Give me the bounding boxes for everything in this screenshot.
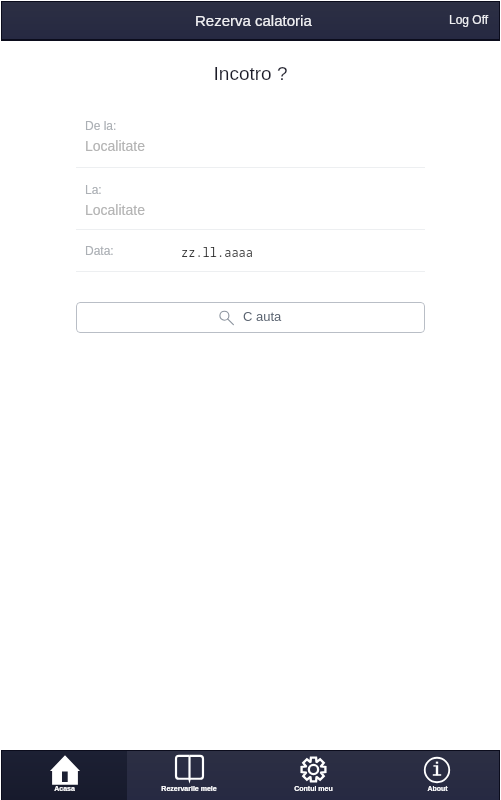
- staticText: Localitate: [85, 138, 145, 154]
- button[interactable]: About: [375, 751, 499, 800]
- staticText: La:: [85, 183, 102, 196]
- staticText: Log Off: [449, 13, 489, 26]
- staticText: Acasa: [54, 785, 75, 793]
- button[interactable]: Contul meu: [251, 751, 375, 800]
- staticText: Rezerva calatoria: [195, 12, 312, 29]
- staticText: De la:: [85, 119, 117, 132]
- staticText: Incotro ?: [0, 63, 501, 84]
- staticText: zz.ll.aaaa: [181, 244, 254, 260]
- staticText: Localitate: [85, 202, 145, 218]
- button[interactable]: Acasa: [2, 751, 127, 800]
- button[interactable]: C auta: [76, 302, 425, 333]
- staticText: Rezervarile mele: [161, 785, 217, 793]
- staticText: Contul meu: [294, 785, 333, 793]
- staticText: Data:: [85, 244, 114, 257]
- staticText: C auta: [243, 309, 282, 324]
- staticText: About: [427, 785, 448, 793]
- button[interactable]: Rezervarile mele: [127, 751, 251, 800]
- button[interactable]: Log Off: [435, 9, 499, 32]
